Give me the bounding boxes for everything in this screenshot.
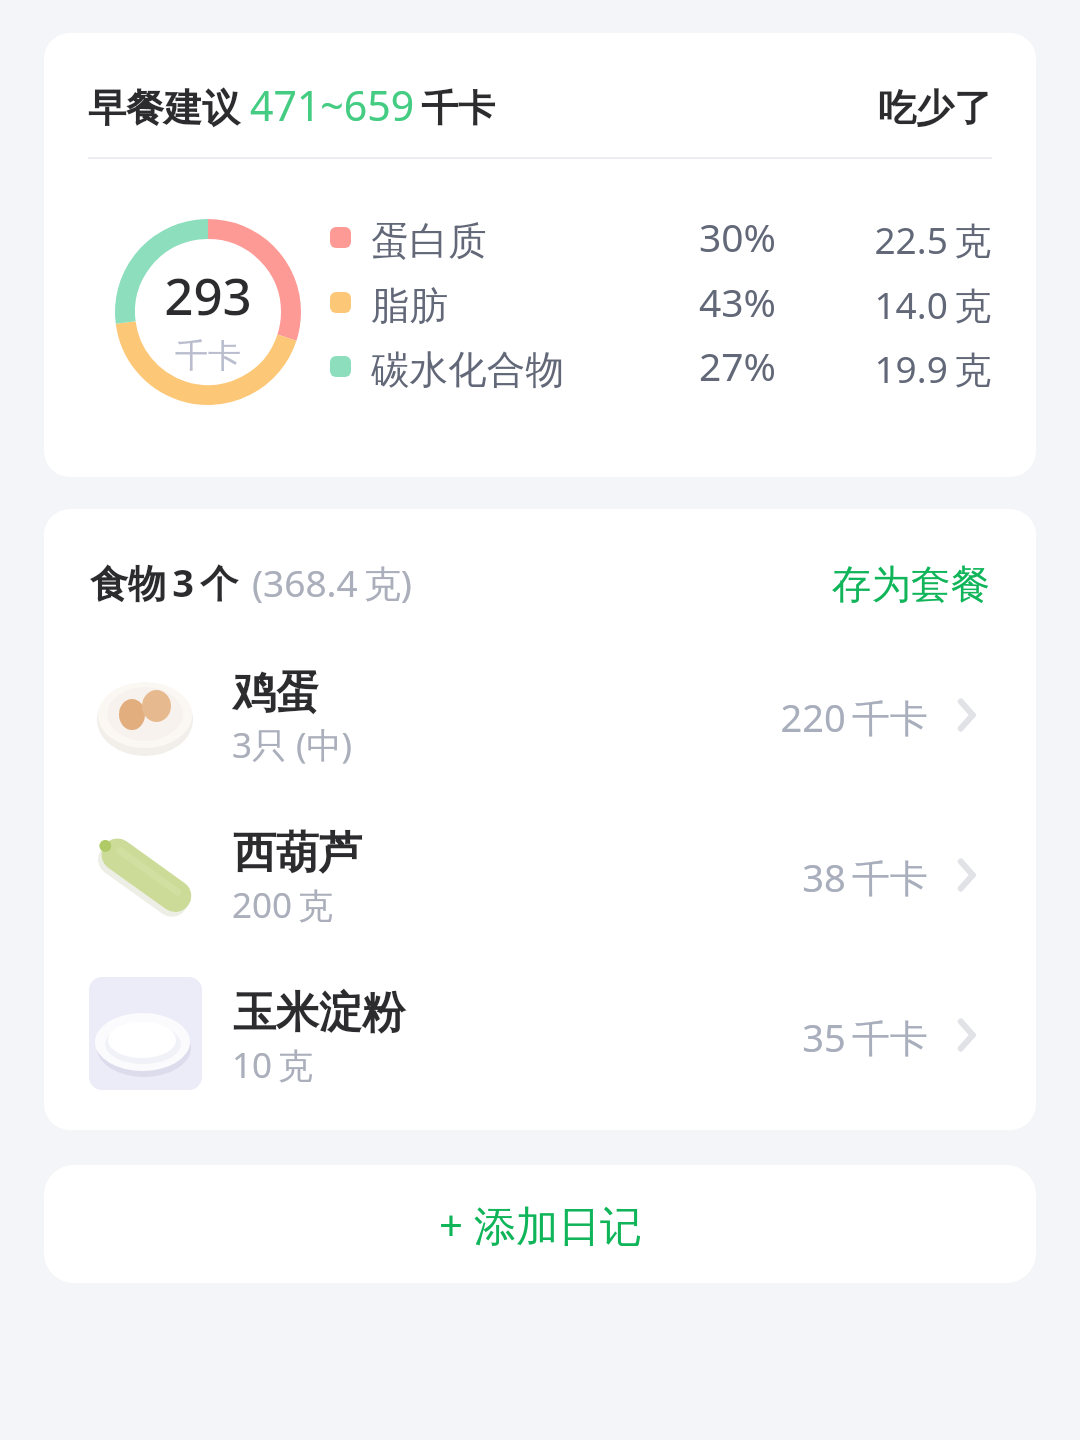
button[interactable]: 西葫芦	[44, 811, 1036, 971]
staticText: 471~659	[250, 77, 415, 133]
staticText: 293	[115, 260, 301, 329]
staticText: 30%	[699, 210, 777, 258]
staticText: 19.9 克	[791, 343, 991, 391]
other: Open food detail	[955, 698, 979, 732]
staticText: 220 千卡	[628, 691, 928, 743]
staticText: 吃少了	[878, 84, 992, 132]
staticText: 鸡蛋	[233, 666, 319, 720]
staticText: 38 千卡	[628, 851, 928, 903]
staticText: 3只 (中)	[232, 721, 353, 769]
staticText: 27%	[699, 339, 777, 387]
staticText: 玉米淀粉	[233, 986, 405, 1040]
staticText: 蛋白质	[371, 217, 487, 265]
staticText: 存为套餐	[832, 560, 990, 608]
staticText: 10 克	[232, 1041, 313, 1089]
button[interactable]: 鸡蛋	[44, 651, 1036, 811]
staticText: 22.5 克	[791, 214, 991, 262]
staticText: 碳水化合物	[371, 346, 564, 394]
staticText: 早餐建议	[88, 84, 240, 132]
button[interactable]: 玉米淀粉	[44, 971, 1036, 1130]
staticText: 千卡	[421, 85, 495, 132]
staticText: 千卡	[115, 335, 301, 377]
button[interactable]: + 添加日记	[44, 1165, 1036, 1283]
staticText: 西葫芦	[233, 826, 362, 880]
staticText: 14.0 克	[791, 279, 991, 327]
staticText: 200 克	[232, 881, 333, 929]
staticText: (368.4 克)	[252, 557, 412, 608]
staticText: 食物 3 个	[90, 556, 239, 608]
staticText: 43%	[699, 275, 777, 323]
button[interactable]: 存为套餐	[830, 552, 990, 612]
staticText: + 添加日记	[439, 1196, 642, 1253]
staticText: 35 千卡	[628, 1011, 928, 1063]
other: Open food detail	[955, 858, 979, 892]
staticText: 脂肪	[371, 282, 449, 330]
other: Open food detail	[955, 1018, 979, 1052]
